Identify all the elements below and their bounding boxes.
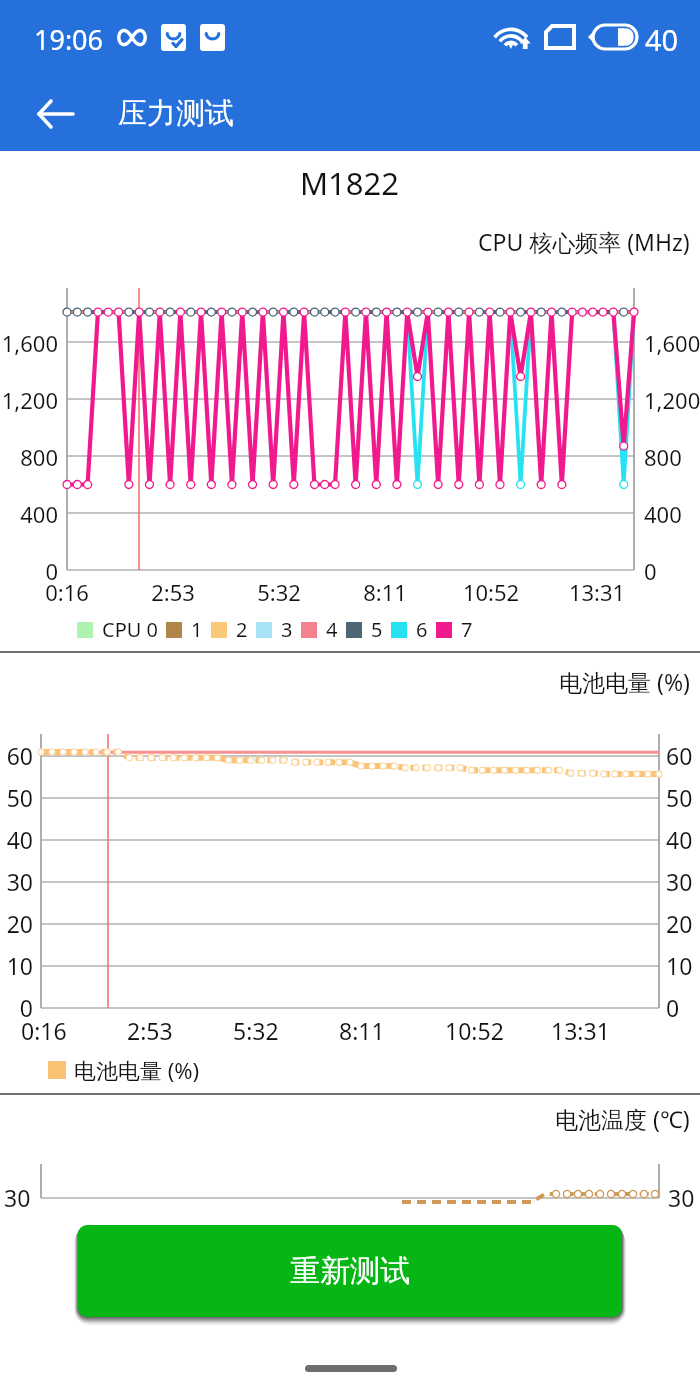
- staticText: 5:32: [229, 577, 329, 607]
- staticText: 8:11: [335, 577, 435, 607]
- staticText: 8:11: [339, 1015, 385, 1046]
- staticText: 20: [666, 908, 693, 939]
- staticText: 1,200: [0, 385, 58, 415]
- staticText: 800: [0, 442, 58, 472]
- staticText: 0: [666, 992, 680, 1023]
- staticText: 30: [0, 866, 33, 897]
- staticText: 2: [236, 616, 248, 643]
- staticText: 60: [0, 740, 33, 771]
- staticText: 3: [281, 616, 293, 643]
- staticText: 40: [0, 824, 33, 855]
- staticText: 0: [644, 556, 700, 586]
- staticText: 50: [666, 782, 693, 813]
- staticText: 13:31: [551, 1015, 610, 1046]
- staticText: 400: [644, 499, 700, 529]
- staticText: 1,600: [0, 328, 58, 358]
- staticText: 4: [326, 616, 338, 643]
- staticText: 5:32: [233, 1015, 279, 1046]
- staticText: 2:53: [127, 1015, 173, 1046]
- staticText: CPU 核心频率 (MHz): [478, 226, 690, 257]
- staticText: 40: [666, 824, 693, 855]
- staticText: 电池温度 (℃): [555, 1103, 690, 1134]
- staticText: 5: [371, 616, 383, 643]
- button[interactable]: Back: [24, 82, 88, 146]
- button[interactable]: 重新测试: [78, 1225, 622, 1317]
- staticText: 10:52: [441, 577, 541, 607]
- staticText: 1,600: [644, 328, 700, 358]
- staticText: 电池电量 (%): [74, 1055, 200, 1085]
- staticText: 1: [191, 616, 203, 643]
- staticText: 30: [666, 866, 693, 897]
- staticText: CPU 0: [102, 616, 158, 643]
- staticText: 6: [416, 616, 428, 643]
- staticText: 0:16: [21, 1015, 67, 1046]
- staticText: 40: [645, 20, 679, 59]
- staticText: 电池电量 (%): [559, 666, 690, 697]
- staticText: M1822: [300, 162, 400, 204]
- staticText: 1,200: [644, 385, 700, 415]
- staticText: 0: [0, 992, 33, 1023]
- staticText: 800: [644, 442, 700, 472]
- staticText: 13:31: [547, 577, 647, 607]
- staticText: 30: [668, 1182, 695, 1213]
- staticText: 19:06: [34, 21, 104, 58]
- staticText: 10:52: [445, 1015, 504, 1046]
- staticText: 重新测试: [290, 1252, 410, 1290]
- staticText: 50: [0, 782, 33, 813]
- staticText: 2:53: [123, 577, 223, 607]
- staticText: 60: [666, 740, 693, 771]
- staticText: 0: [0, 556, 58, 586]
- staticText: 30: [4, 1182, 31, 1213]
- staticText: 20: [0, 908, 33, 939]
- staticText: 400: [0, 499, 58, 529]
- staticText: 10: [0, 950, 33, 981]
- staticText: 7: [461, 616, 473, 643]
- staticText: 0:16: [17, 577, 117, 607]
- staticText: 压力测试: [118, 95, 234, 132]
- staticText: 10: [666, 950, 693, 981]
